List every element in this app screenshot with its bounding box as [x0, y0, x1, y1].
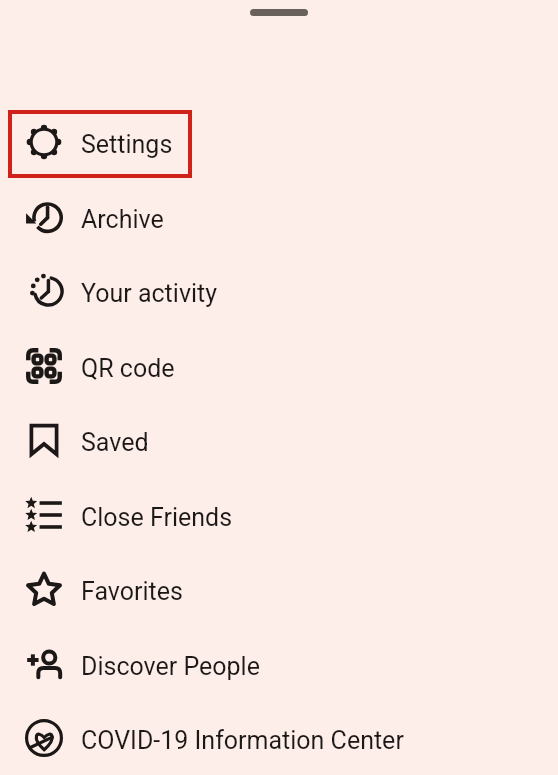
staticText: Your activity [81, 279, 218, 308]
staticText: QR code [81, 354, 175, 383]
button[interactable]: Your activity [0, 259, 558, 327]
button[interactable]: Discover People [0, 632, 558, 700]
button[interactable]: Archive [0, 185, 558, 253]
staticText: COVID-19 Information Center [81, 726, 404, 755]
staticText: Favorites [81, 577, 183, 606]
staticText: Archive [81, 205, 164, 234]
button[interactable]: Close Friends [0, 483, 558, 551]
button[interactable]: Settings [0, 110, 558, 178]
button[interactable]: QR code [0, 334, 558, 402]
staticText: Close Friends [81, 503, 233, 532]
staticText: Settings [81, 130, 173, 159]
button[interactable]: COVID-19 Information Center [0, 706, 558, 774]
staticText: Saved [81, 428, 149, 457]
button[interactable]: Saved [0, 408, 558, 476]
button[interactable]: Favorites [0, 557, 558, 625]
staticText: Discover People [81, 652, 260, 681]
